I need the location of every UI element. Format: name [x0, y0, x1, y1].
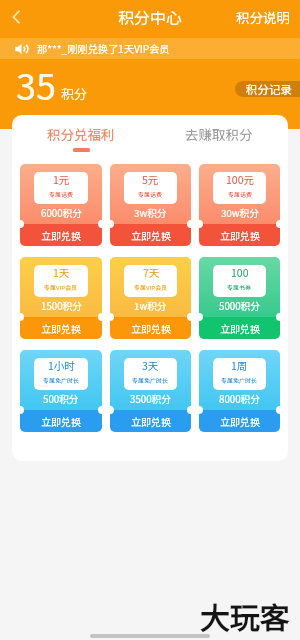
staticText: 去赚取积分: [185, 124, 253, 144]
staticText: 积分记录: [246, 81, 292, 97]
staticText: 积分: [61, 84, 88, 103]
staticText: 专属免广时长: [221, 376, 258, 385]
staticText: 1元: [53, 172, 70, 187]
staticText: 3500积分: [130, 392, 171, 406]
staticText: 8000积分: [219, 392, 260, 406]
staticText: 500积分: [43, 392, 79, 406]
staticText: 立即兑换: [220, 228, 260, 242]
staticText: 专属书券: [227, 283, 252, 292]
staticText: 1小时: [48, 358, 75, 373]
staticText: 5000积分: [219, 299, 260, 313]
button[interactable]: 3天: [110, 350, 191, 432]
staticText: 立即兑换: [41, 414, 81, 428]
staticText: 1周: [231, 358, 248, 373]
staticText: 专属话费: [228, 190, 253, 199]
staticText: 专属免广时长: [132, 376, 169, 385]
staticText: 大玩客: [200, 594, 290, 637]
button[interactable]: 积分记录: [235, 81, 300, 97]
staticText: 100元: [226, 172, 254, 187]
staticText: 积分兑福利: [47, 124, 115, 144]
button[interactable]: 1小时: [20, 350, 102, 432]
staticText: 3天: [142, 358, 159, 373]
staticText: 7天: [143, 265, 160, 280]
button[interactable]: 1元: [20, 164, 102, 246]
staticText: 立即兑换: [41, 321, 81, 335]
staticText: 100: [231, 265, 249, 280]
button[interactable]: 1周: [199, 350, 280, 432]
staticText: 积分说明: [236, 7, 290, 27]
staticText: 1500积分: [41, 299, 82, 313]
staticText: 专属VIP会员: [134, 283, 168, 292]
staticText: 立即兑换: [41, 228, 81, 242]
staticText: 30w积分: [221, 206, 259, 220]
staticText: 1w积分: [134, 299, 167, 313]
button[interactable]: 5元: [110, 164, 191, 246]
button[interactable]: 积分兑福利: [12, 115, 150, 152]
staticText: 立即兑换: [220, 321, 260, 335]
button[interactable]: 7天: [110, 257, 191, 339]
staticText: 立即兑换: [220, 414, 260, 428]
button[interactable]: 100: [199, 257, 280, 339]
staticText: 专属免广时长: [43, 376, 80, 385]
staticText: 6000积分: [41, 206, 82, 220]
staticText: 专属话费: [138, 190, 163, 199]
staticText: 专属话费: [49, 190, 74, 199]
staticText: 3w积分: [134, 206, 167, 220]
staticText: 1天: [53, 265, 70, 280]
staticText: 5元: [142, 172, 159, 187]
button[interactable]: 100元: [199, 164, 280, 246]
staticText: 专属VIP会员: [44, 283, 78, 292]
button[interactable]: 那***_刚刚兑换了1天VIP会员: [0, 38, 300, 59]
staticText: 立即兑换: [131, 321, 171, 335]
button[interactable]: Back: [0, 0, 34, 34]
button[interactable]: 1天: [20, 257, 102, 339]
button[interactable]: 积分说明: [224, 0, 300, 34]
staticText: 积分中心: [118, 5, 183, 28]
staticText: 立即兑换: [131, 228, 171, 242]
staticText: 35: [16, 58, 56, 110]
staticText: 立即兑换: [131, 414, 171, 428]
button[interactable]: 去赚取积分: [150, 115, 288, 148]
staticText: 那***_刚刚兑换了1天VIP会员: [37, 41, 170, 56]
